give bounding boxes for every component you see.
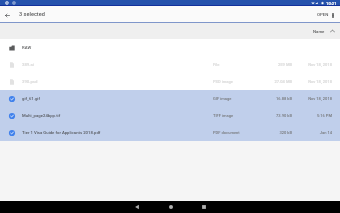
staticText: 390.psd — [22, 79, 210, 84]
staticText: 5:16 PM — [295, 113, 332, 118]
button[interactable]: 389.ai — [0, 56, 340, 73]
staticText: Name — [313, 29, 326, 34]
staticText: File — [213, 62, 271, 67]
button[interactable]: gif_61.gif — [0, 90, 340, 107]
staticText: Nov 18, 2018 — [295, 62, 332, 67]
staticText: 259 MB — [241, 62, 292, 67]
staticText: Tier 1 Visa Guide for Applicants 2018.pd… — [22, 130, 210, 135]
staticText: RAW — [22, 45, 210, 50]
staticText: Nov 18, 2018 — [295, 96, 332, 101]
staticText: 10:21 — [326, 1, 337, 6]
button[interactable]: 390.psd — [0, 73, 340, 90]
staticText: 389.ai — [22, 62, 210, 67]
button[interactable]: OPEN — [313, 6, 333, 23]
button[interactable]: Recents — [197, 201, 211, 213]
staticText: PDF document — [213, 130, 271, 135]
staticText: 27.04 MB — [241, 79, 292, 84]
button[interactable]: More options — [327, 9, 339, 21]
staticText: 16.88 kB — [241, 96, 292, 101]
staticText: Nov 18, 2018 — [295, 79, 332, 84]
button[interactable]: Tier 1 Visa Guide for Applicants 2018.pd… — [0, 124, 340, 141]
staticText: TIFF image — [213, 113, 271, 118]
button[interactable]: Back — [130, 201, 144, 213]
staticText: Jan 14 — [295, 130, 332, 135]
staticText: 3 selected — [19, 11, 45, 18]
staticText: gif_61.gif — [22, 96, 210, 101]
button[interactable]: Name — [313, 23, 338, 39]
staticText: 73.90 kB — [241, 113, 292, 118]
staticText: GIF image — [213, 96, 271, 101]
staticText: OPEN — [317, 12, 329, 17]
button[interactable]: Back — [0, 8, 14, 22]
button[interactable]: RAW — [0, 39, 340, 56]
staticText: 320 kB — [241, 130, 292, 135]
staticText: PSD image — [213, 79, 271, 84]
button[interactable]: Multi_page24bpp.tif — [0, 107, 340, 124]
button[interactable]: Home — [164, 201, 178, 213]
staticText: Multi_page24bpp.tif — [22, 113, 210, 118]
